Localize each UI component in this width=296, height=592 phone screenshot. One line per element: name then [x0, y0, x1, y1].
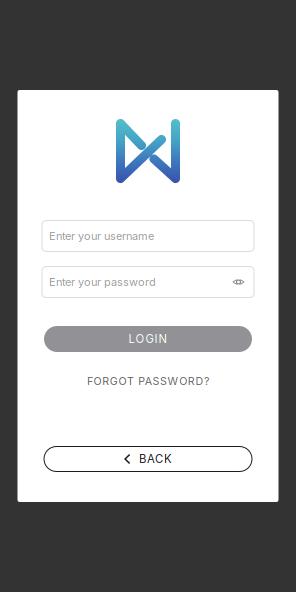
staticText: Enter your password	[49, 275, 156, 289]
button[interactable]: BACK	[43, 446, 252, 472]
staticText: FORGOT PASSWORD?	[87, 374, 209, 387]
staticText: Enter your username	[49, 229, 154, 243]
staticText: LOGIN	[128, 332, 167, 346]
button[interactable]: LOGIN	[44, 326, 252, 352]
button[interactable]: Enter your username	[41, 220, 254, 252]
staticText: BACK	[139, 452, 172, 466]
button[interactable]: Enter your password	[41, 266, 254, 298]
button[interactable]: FORGOT PASSWORD?	[44, 375, 252, 387]
